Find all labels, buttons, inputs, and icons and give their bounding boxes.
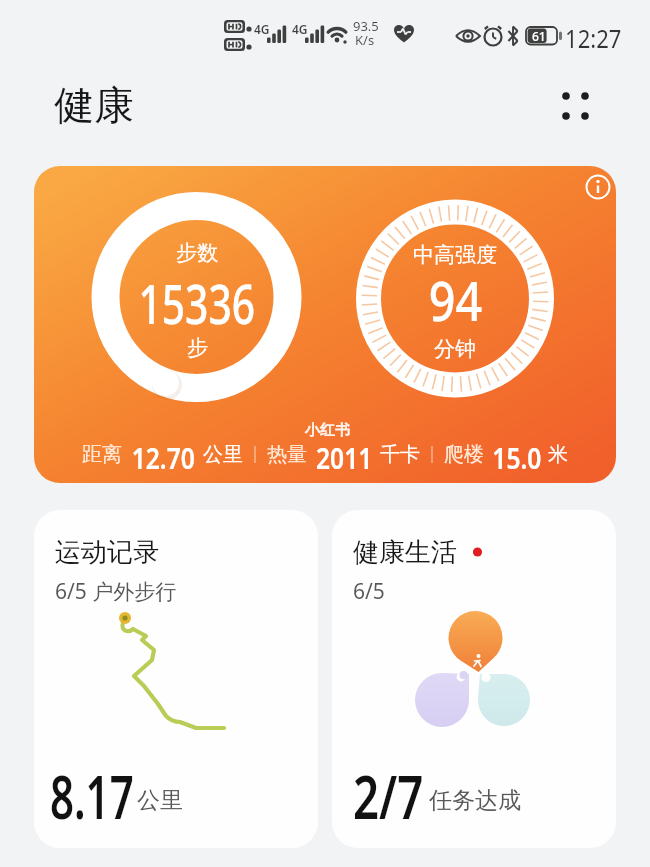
- staticText: 2011: [316, 438, 373, 470]
- button[interactable]: 健康生活: [332, 510, 616, 848]
- button[interactable]: 步数: [34, 166, 616, 483]
- staticText: 分钟: [434, 336, 476, 362]
- staticText: 热量: [267, 442, 307, 467]
- button[interactable]: [575, 166, 616, 210]
- staticText: 千卡: [380, 442, 420, 467]
- button[interactable]: 运动记录: [34, 510, 318, 848]
- staticText: 距离: [82, 442, 122, 467]
- staticText: 公里: [137, 786, 183, 815]
- staticText: 步数: [176, 240, 218, 266]
- staticText: 运动记录: [55, 536, 159, 569]
- staticText: 12.70: [132, 438, 195, 470]
- staticText: 4G: [254, 21, 270, 37]
- button[interactable]: [552, 82, 600, 130]
- staticText: 12:27: [565, 20, 622, 55]
- staticText: 61: [532, 28, 546, 44]
- staticText: 94: [429, 262, 482, 337]
- staticText: 米: [548, 442, 568, 467]
- staticText: 8.17: [50, 755, 134, 837]
- staticText: 6/5 户外步行: [55, 577, 177, 606]
- staticText: 步: [187, 335, 208, 361]
- staticText: 2/7: [353, 755, 424, 837]
- staticText: 任务达成: [429, 786, 521, 815]
- staticText: 93.5: [353, 17, 379, 35]
- staticText: 中高强度: [413, 242, 497, 268]
- staticText: 健康生活: [353, 536, 457, 569]
- staticText: 公里: [203, 442, 243, 467]
- staticText: 6/5: [353, 577, 385, 606]
- staticText: 4G: [292, 21, 308, 37]
- staticText: 15.0: [492, 438, 542, 470]
- staticText: 健康: [54, 80, 134, 130]
- staticText: 爬楼: [444, 442, 484, 467]
- staticText: K/s: [355, 31, 375, 49]
- staticText: 15336: [138, 265, 255, 340]
- staticText: 小红书: [305, 421, 350, 440]
